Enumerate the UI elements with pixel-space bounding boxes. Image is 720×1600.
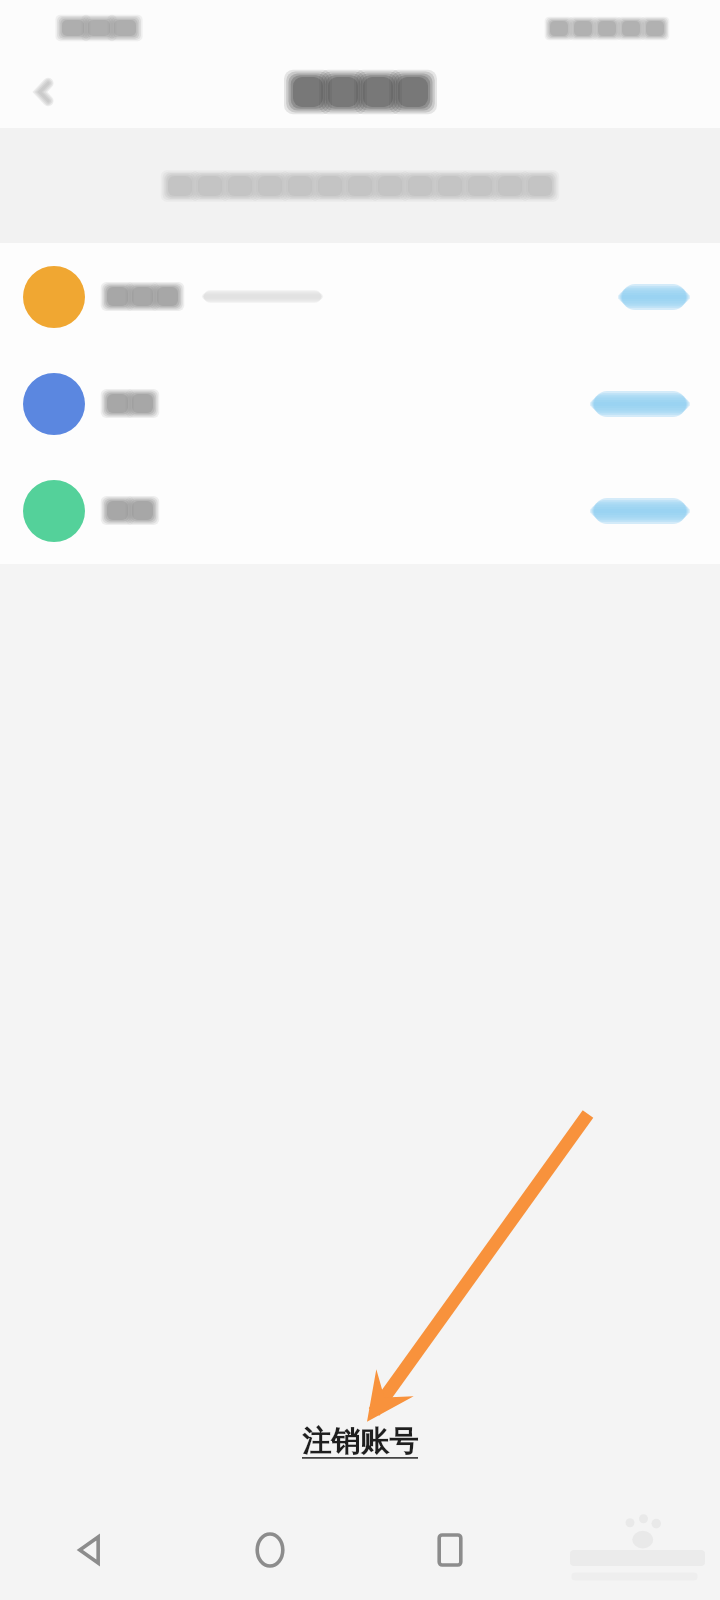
button[interactable]: Back [0, 1500, 180, 1600]
button[interactable]: Home [180, 1500, 360, 1600]
button[interactable]: Action [618, 280, 690, 314]
button[interactable]: Action [0, 457, 720, 564]
button[interactable]: Action [0, 243, 720, 350]
button[interactable]: Action [0, 350, 720, 457]
staticText: 注销账号 [302, 1423, 418, 1460]
button[interactable]: Action [590, 387, 690, 421]
button[interactable]: Recent apps [360, 1500, 540, 1600]
button[interactable]: Back [20, 68, 68, 116]
button[interactable]: Action [590, 494, 690, 528]
button[interactable]: 注销账号 [294, 1419, 426, 1464]
